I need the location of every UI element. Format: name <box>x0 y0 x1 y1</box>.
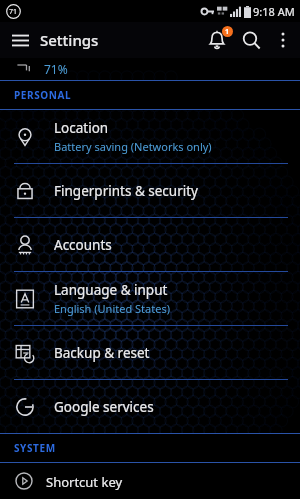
staticText: Settings <box>40 30 99 50</box>
staticText: Location <box>54 119 109 137</box>
button[interactable]: Search <box>234 23 268 57</box>
staticText: Fingerprints & security <box>54 182 198 200</box>
button[interactable]: Location <box>0 110 300 163</box>
staticText: Shortcut key <box>46 473 123 491</box>
button[interactable]: Notifications <box>200 23 234 57</box>
button[interactable]: Fingerprints & security <box>0 164 300 217</box>
staticText: SYSTEM <box>14 441 56 455</box>
staticText: Backup & reset <box>54 344 150 362</box>
staticText: 1 <box>225 27 230 37</box>
button[interactable]: Google services <box>0 380 300 433</box>
staticText: 9:18 AM <box>253 4 295 19</box>
button[interactable]: Shortcut key <box>0 463 300 493</box>
staticText: Battery saving (Networks only) <box>54 139 212 154</box>
staticText: 71% <box>44 61 68 77</box>
staticText: English (United States) <box>54 301 170 316</box>
button[interactable]: Backup & reset <box>0 326 300 379</box>
button[interactable]: More options <box>268 25 298 55</box>
staticText: Language & input <box>54 281 168 299</box>
button[interactable]: Accounts <box>0 218 300 271</box>
button[interactable]: Language & input <box>0 272 300 325</box>
button[interactable]: Open navigation drawer <box>8 28 32 52</box>
staticText: Accounts <box>54 236 112 254</box>
button[interactable]: 71% <box>0 58 300 80</box>
staticText: PERSONAL <box>14 88 72 102</box>
staticText: Google services <box>54 398 154 416</box>
staticText: 71 <box>9 7 18 17</box>
